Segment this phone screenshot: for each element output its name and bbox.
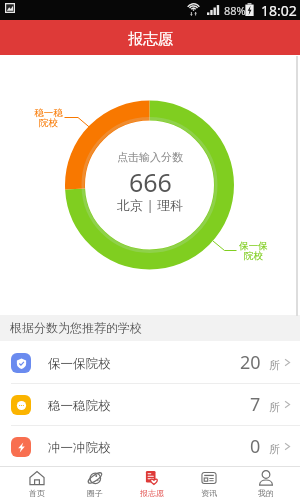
staticText: 稳一稳 院校	[34, 107, 63, 129]
staticText: 我的	[258, 488, 274, 498]
button[interactable]: 我的	[237, 467, 294, 500]
button[interactable]: 冲一冲院校	[0, 426, 300, 467]
button[interactable]: 资讯	[180, 467, 237, 500]
staticText: 稳一稳院校	[48, 398, 111, 414]
staticText: 点击输入分数	[117, 150, 183, 164]
staticText: 报志愿	[128, 30, 173, 49]
staticText: 根据分数为您推荐的学校	[10, 320, 142, 335]
staticText: 88%	[224, 3, 246, 18]
staticText: 资讯	[201, 488, 217, 498]
button[interactable]: 报志愿	[123, 467, 180, 500]
staticText: 所	[269, 442, 280, 456]
staticText: 冲一冲院校	[48, 440, 111, 456]
staticText: 保一保院校	[48, 356, 111, 372]
staticText: 所	[269, 358, 280, 372]
staticText: 20	[240, 350, 261, 375]
button[interactable]: 稳一稳院校	[0, 384, 300, 425]
staticText: 666	[129, 165, 172, 199]
staticText: 报志愿	[140, 488, 164, 498]
button[interactable]: 保一保院校	[0, 342, 300, 383]
staticText: 所	[269, 400, 280, 414]
staticText: 保一保 院校	[239, 240, 268, 262]
staticText: 7	[250, 392, 261, 417]
staticText: 18:02	[261, 1, 297, 20]
staticText: 圈子	[87, 488, 103, 498]
staticText: 北京 | 理科	[117, 196, 183, 214]
staticText: 首页	[29, 488, 45, 498]
button[interactable]: 首页	[8, 467, 66, 500]
button[interactable]: 圈子	[66, 467, 123, 500]
staticText: 0	[250, 434, 261, 459]
